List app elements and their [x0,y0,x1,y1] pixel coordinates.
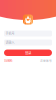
staticText: 请输入 [5,40,14,45]
button[interactable]: 注册账号 [40,58,52,63]
button[interactable]: 忘记密码 [4,59,12,62]
staticText: 登录 [25,50,31,55]
button[interactable]: 登录 [4,49,52,56]
staticText: 手机号 [5,31,14,36]
staticText: 注册账号 [40,58,52,63]
staticText: 忘记密码 [4,59,12,62]
